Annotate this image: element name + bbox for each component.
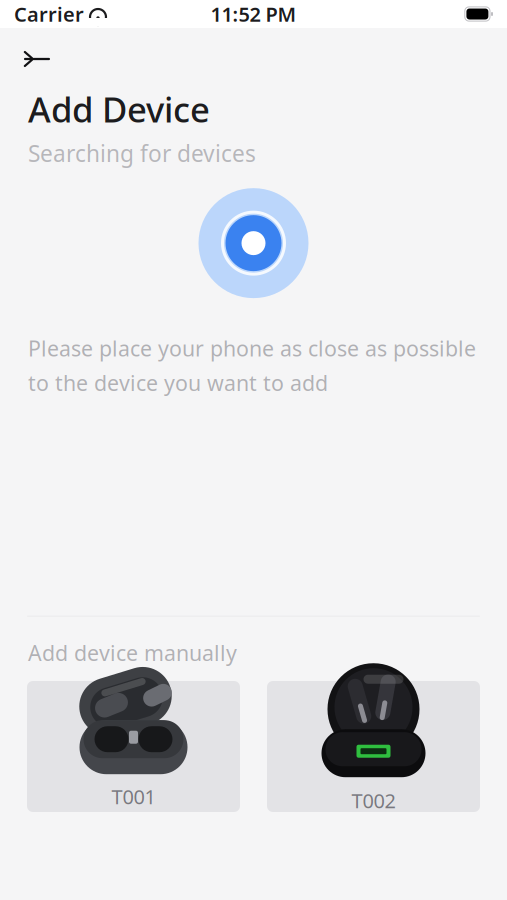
button[interactable]: T002 — [267, 681, 480, 812]
staticText: Add Device — [28, 86, 210, 132]
staticText: Carrier — [14, 1, 84, 27]
staticText: 11:52 PM — [210, 1, 296, 27]
button[interactable]: Back — [0, 38, 62, 80]
staticText: Add device manually — [28, 639, 237, 667]
button[interactable]: T001 — [27, 681, 240, 812]
staticText: T001 — [111, 783, 155, 810]
staticText: Searching for devices — [28, 138, 256, 168]
staticText: T002 — [351, 787, 395, 814]
staticText: Please place your phone as close as poss… — [28, 334, 476, 397]
